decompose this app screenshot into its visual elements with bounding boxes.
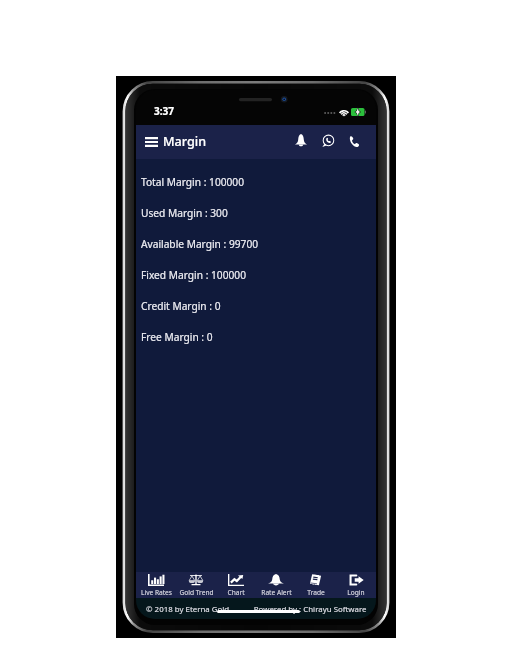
staticText: Gold Trend <box>179 588 214 597</box>
button[interactable]: Call <box>342 129 366 153</box>
button[interactable]: Trade <box>296 572 336 598</box>
staticText: Chart <box>227 588 245 597</box>
other: Menu <box>145 137 158 147</box>
button[interactable]: Fixed Margin : 100000 <box>141 259 376 290</box>
button[interactable]: Credit Margin : 0 <box>141 290 376 321</box>
button[interactable]: Login <box>336 572 376 598</box>
staticText: Fixed Margin : 100000 <box>141 268 247 282</box>
button[interactable]: Used Margin : 300 <box>141 197 376 228</box>
button[interactable]: Total Margin : 100000 <box>141 166 376 197</box>
staticText: Used Margin : 300 <box>141 206 228 220</box>
staticText: Live Rates <box>141 588 172 597</box>
staticText: © 2018 by Eterna Gold Powered by : Chira… <box>146 604 367 615</box>
staticText: Rate Alert <box>261 588 292 597</box>
button[interactable]: Live Rates <box>136 572 176 598</box>
button[interactable]: Notifications <box>289 128 313 152</box>
button[interactable]: Rate Alert <box>256 572 296 598</box>
staticText: Login <box>347 588 365 597</box>
staticText: Margin <box>163 133 207 150</box>
staticText: Total Margin : 100000 <box>141 175 245 189</box>
button[interactable]: Free Margin : 0 <box>141 321 376 352</box>
staticText: Available Margin : 99700 <box>141 237 259 251</box>
staticText: Free Margin : 0 <box>141 330 213 344</box>
staticText: Credit Margin : 0 <box>141 299 221 313</box>
button[interactable]: Available Margin : 99700 <box>141 228 376 259</box>
button[interactable]: Chart <box>216 572 256 598</box>
staticText: Trade <box>307 588 325 597</box>
button[interactable]: Menu <box>141 128 211 155</box>
staticText: 3:37 <box>154 104 174 118</box>
button[interactable]: WhatsApp <box>316 129 340 153</box>
button[interactable]: Gold Trend <box>176 572 216 598</box>
